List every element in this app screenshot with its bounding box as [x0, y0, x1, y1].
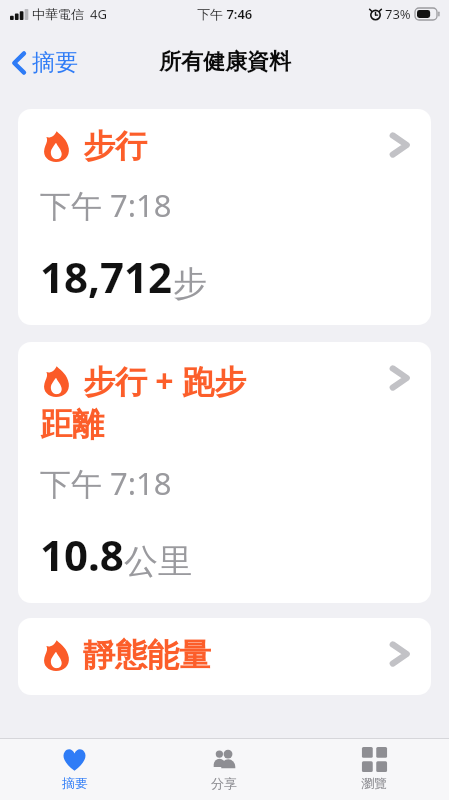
- staticText: 下午 7:46: [197, 5, 253, 23]
- staticText: 分享: [211, 775, 237, 791]
- staticText: 步: [173, 262, 207, 305]
- button[interactable]: 分享: [149, 739, 299, 800]
- staticText: 距離: [40, 404, 104, 444]
- staticText: 中華電信: [32, 6, 84, 22]
- staticText: 摘要: [62, 775, 88, 791]
- staticText: 公里: [124, 540, 192, 583]
- button[interactable]: 靜態能量: [18, 618, 431, 695]
- staticText: 下午 7:18: [40, 462, 172, 504]
- staticText: 所有健康資料: [159, 48, 291, 76]
- staticText: 18,712: [40, 248, 173, 305]
- staticText: 步行 + 跑步: [83, 359, 246, 403]
- button[interactable]: 瀏覽: [299, 739, 449, 800]
- staticText: 4G: [90, 5, 107, 23]
- staticText: 10.8: [40, 526, 124, 583]
- staticText: 73%: [385, 5, 411, 23]
- staticText: 下午 7:18: [40, 184, 172, 226]
- staticText: 靜態能量: [83, 635, 211, 675]
- staticText: 步行: [83, 126, 147, 166]
- button[interactable]: 步行: [18, 109, 431, 325]
- staticText: 摘要: [32, 48, 78, 77]
- button[interactable]: 步行 + 跑步: [18, 342, 431, 603]
- button[interactable]: 摘要: [8, 44, 82, 81]
- button[interactable]: 摘要: [0, 739, 149, 800]
- staticText: 瀏覽: [361, 775, 387, 791]
